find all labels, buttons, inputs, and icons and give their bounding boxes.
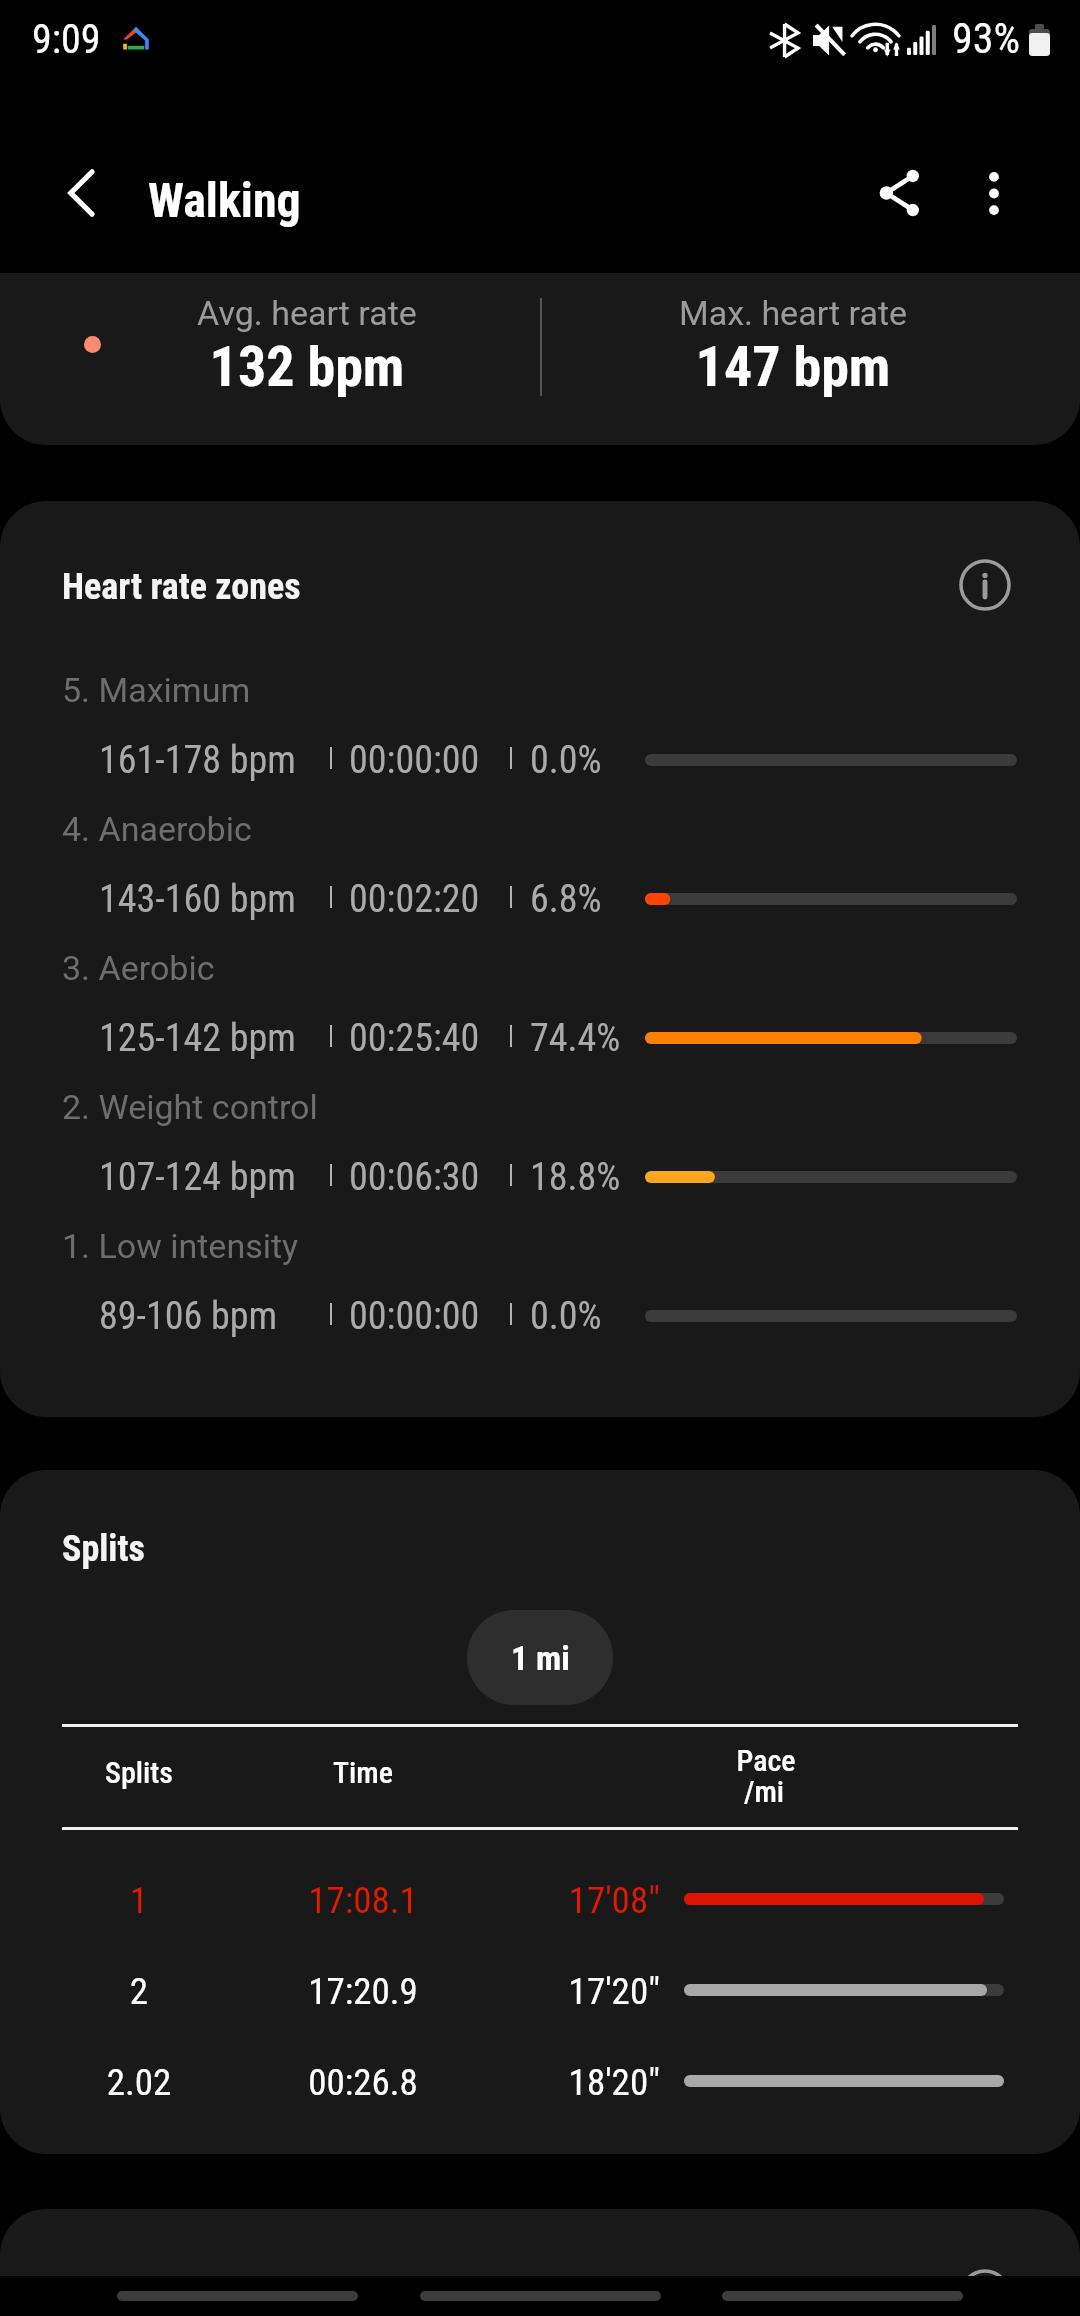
button[interactable]: Navigate up xyxy=(48,159,116,227)
staticText: 18.8% xyxy=(530,1155,621,1200)
staticText: Walking xyxy=(148,172,301,228)
staticText: 00:00:00 xyxy=(349,1294,480,1339)
button[interactable] xyxy=(0,2209,1080,2316)
staticText: Splits xyxy=(59,1755,219,1790)
staticText: 1. Low intensity xyxy=(62,1226,299,1266)
staticText: 18'20" xyxy=(500,2061,660,2104)
staticText: 17:20.9 xyxy=(283,1970,443,2013)
staticText: 143-160 bpm xyxy=(99,877,296,922)
staticText: 2. Weight control xyxy=(62,1087,318,1127)
staticText: 2 xyxy=(59,1970,219,2013)
staticText: 74.4% xyxy=(530,1016,621,1061)
staticText: 9:09 xyxy=(32,16,101,63)
staticText: 3. Aerobic xyxy=(62,948,215,988)
button[interactable]: Recent apps xyxy=(117,2291,358,2301)
button[interactable]: More options xyxy=(960,159,1028,227)
staticText: Splits xyxy=(62,1528,145,1570)
staticText: 17'08" xyxy=(500,1879,660,1922)
staticText: 00:06:30 xyxy=(349,1155,480,1200)
button[interactable]: Information about heart rate zones xyxy=(950,550,1020,620)
staticText: 0.0% xyxy=(530,738,602,783)
staticText: 00:00:00 xyxy=(349,738,480,783)
button[interactable]: 1 mi xyxy=(467,1610,613,1705)
staticText: 00:02:20 xyxy=(349,877,480,922)
staticText: 1 xyxy=(59,1879,219,1922)
button[interactable]: Share xyxy=(866,159,934,227)
staticText: 17'20" xyxy=(500,1970,660,2013)
staticText: 1 mi xyxy=(511,1638,570,1678)
staticText: 5. Maximum xyxy=(62,670,251,710)
staticText: 2.02 xyxy=(59,2061,219,2104)
staticText: 107-124 bpm xyxy=(99,1155,296,1200)
staticText: 00:25:40 xyxy=(349,1016,480,1061)
staticText: 17:08.1 xyxy=(283,1879,443,1922)
staticText: /mi xyxy=(684,1774,844,1809)
staticText: 0.0% xyxy=(530,1294,602,1339)
staticText: Max. heart rate xyxy=(603,293,983,333)
staticText: 93% xyxy=(952,14,1021,63)
staticText: 125-142 bpm xyxy=(99,1016,296,1061)
staticText: 6.8% xyxy=(530,877,602,922)
staticText: 147 bpm xyxy=(603,334,983,400)
button[interactable]: Back xyxy=(722,2291,963,2301)
button[interactable]: Avg. heart rate xyxy=(0,273,1080,445)
staticText: Pace xyxy=(686,1743,846,1778)
staticText: Heart rate zones xyxy=(62,566,301,608)
button[interactable]: Home xyxy=(420,2291,661,2301)
staticText: Time xyxy=(283,1755,443,1790)
staticText: 161-178 bpm xyxy=(99,738,296,783)
staticText: 4. Anaerobic xyxy=(62,809,252,849)
staticText: 89-106 bpm xyxy=(99,1294,278,1339)
staticText: 132 bpm xyxy=(117,334,497,400)
staticText: 00:26.8 xyxy=(283,2061,443,2104)
staticText: Avg. heart rate xyxy=(117,293,497,333)
